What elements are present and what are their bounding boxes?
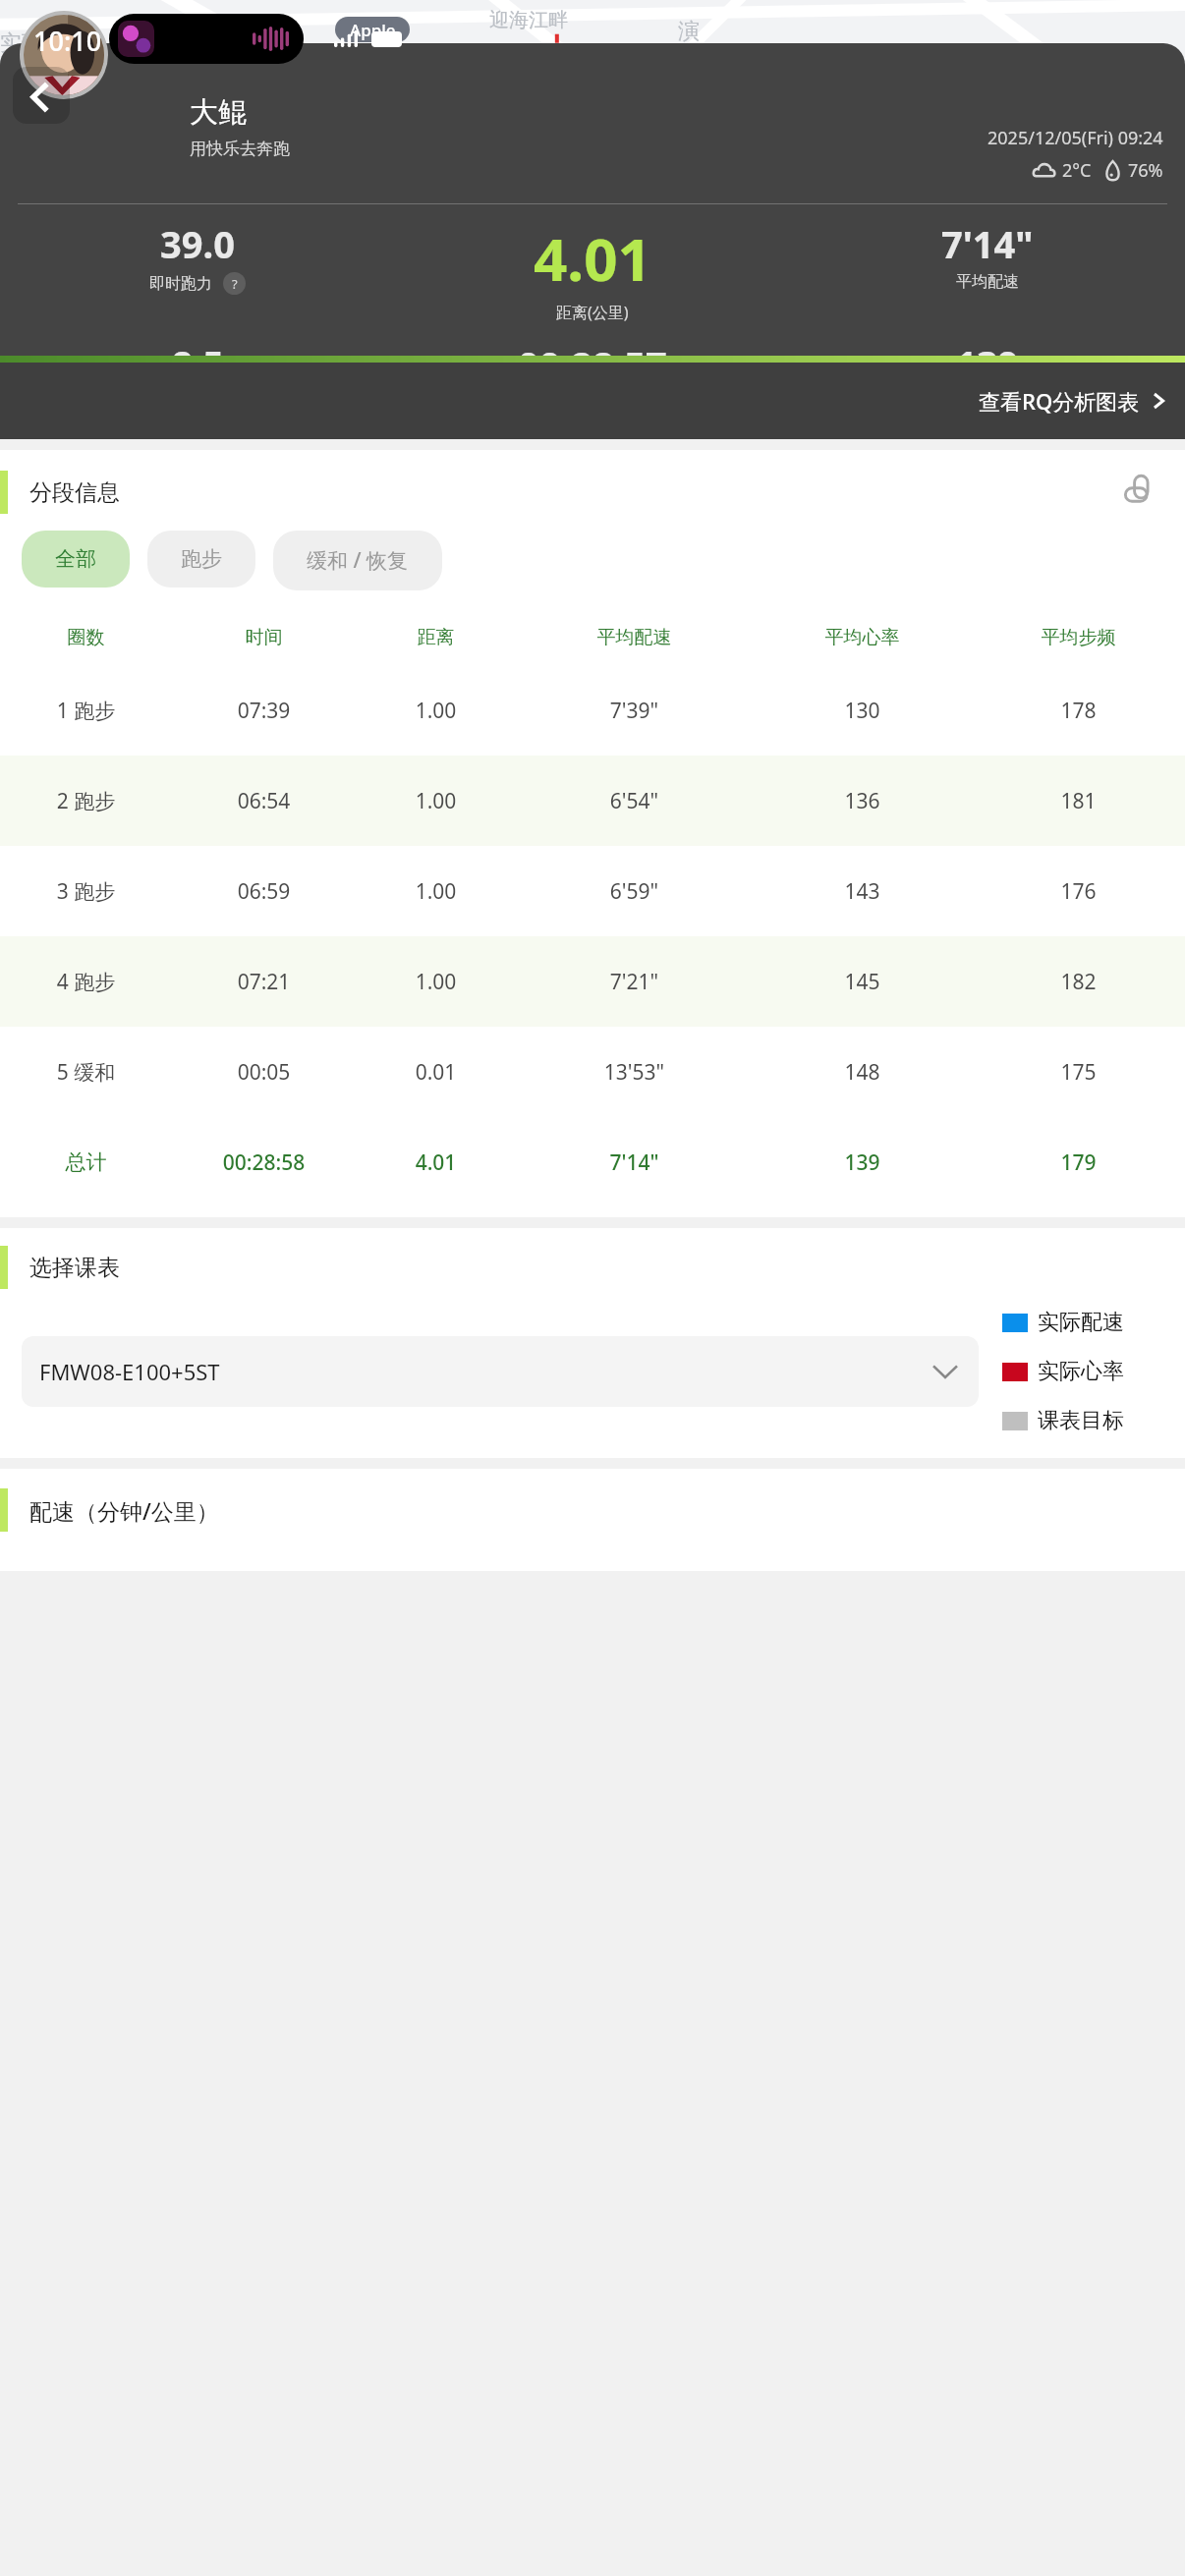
staticText: 148 — [753, 1058, 972, 1087]
staticText: 2025/12/05(Fri) 09:24 — [987, 126, 1163, 150]
staticText: 1.00 — [356, 877, 516, 906]
staticText: 分段信息 — [29, 478, 120, 507]
staticText: 2 跑步 — [0, 787, 172, 815]
button[interactable]: 跑步 — [147, 531, 255, 588]
staticText: 配速（分钟/公里） — [29, 1495, 219, 1526]
staticText: 实际配速 — [1038, 1309, 1124, 1336]
staticText: 迎海江畔 — [489, 8, 568, 32]
staticText: 平均心率 — [753, 626, 972, 649]
staticText: Apple — [350, 19, 396, 41]
staticText: 00:28:58 — [172, 1148, 356, 1177]
staticText: 145 — [753, 968, 972, 996]
button[interactable]: 查看RQ分析图表 — [0, 363, 1185, 439]
staticText: 平均步频 — [972, 626, 1185, 649]
staticText: 4 跑步 — [0, 968, 172, 996]
staticText: 6'59" — [516, 877, 753, 906]
staticText: 距离 — [356, 626, 516, 649]
staticText: 实验中心 — [0, 29, 86, 57]
staticText: 选择课表 — [29, 1254, 120, 1282]
staticText: 13'53" — [516, 1058, 753, 1087]
staticText: 1.00 — [356, 697, 516, 725]
staticText: 39.0 — [160, 218, 235, 269]
staticText: 181 — [972, 787, 1185, 815]
staticText: 143 — [753, 877, 972, 906]
staticText: 大鲲 — [190, 94, 247, 131]
button[interactable]: 全部 — [22, 531, 130, 588]
staticText: 4.01 — [356, 1148, 516, 1177]
staticText: 182 — [972, 968, 1185, 996]
button[interactable]: FMW08-E100+5ST — [22, 1336, 979, 1407]
staticText: 2°C — [1062, 158, 1092, 183]
button[interactable]: 4 跑步 — [0, 936, 1185, 1027]
staticText: 课表目标 — [1038, 1407, 1124, 1434]
staticText: 07:39 — [172, 697, 356, 725]
button[interactable]: Rotate screen — [1118, 468, 1167, 517]
staticText: FMW08-E100+5ST — [39, 1357, 220, 1386]
staticText: 全部 — [55, 546, 96, 572]
staticText: 6'54" — [516, 787, 753, 815]
staticText: 4.01 — [534, 218, 651, 299]
staticText: 00:05 — [172, 1058, 356, 1087]
staticText: 139 — [753, 1148, 972, 1177]
staticText: 平均心率 — [956, 391, 1019, 411]
staticText: 时间 — [172, 626, 356, 649]
staticText: 130 — [753, 697, 972, 725]
staticText: 179 — [972, 1148, 1185, 1177]
staticText: 76% — [1128, 158, 1163, 183]
button[interactable]: Back — [13, 67, 70, 124]
staticText: 5 缓和 — [0, 1058, 172, 1087]
staticText: 136 — [753, 787, 972, 815]
staticText: 0.77 — [556, 429, 629, 478]
staticText: 查看RQ分析图表 — [979, 386, 1140, 416]
staticText: 23 — [177, 429, 219, 478]
staticText: 7'14" — [941, 218, 1034, 269]
staticText: 7'21" — [516, 968, 753, 996]
staticText: 3 跑步 — [0, 877, 172, 906]
staticText: 1 跑步 — [0, 697, 172, 725]
button[interactable]: 1 跑步 — [0, 665, 1185, 756]
staticText: 平均配速 — [956, 272, 1019, 292]
staticText: 7'14" — [516, 1148, 753, 1177]
staticText: 178 — [972, 697, 1185, 725]
staticText: 缓和 / 恢复 — [307, 546, 409, 575]
staticText: 跑步 — [181, 546, 222, 572]
staticText: 07:21 — [172, 968, 356, 996]
staticText: 总计 — [0, 1149, 172, 1175]
staticText: 实际心率 — [1038, 1358, 1124, 1385]
staticText: 1.00 — [356, 787, 516, 815]
button[interactable]: 5 缓和 — [0, 1027, 1185, 1117]
staticText: 179 — [956, 429, 1019, 478]
staticText: 00:28:57 — [518, 339, 667, 390]
staticText: 即时跑力 — [149, 274, 212, 294]
staticText: 139 — [956, 339, 1019, 388]
staticText: 176 — [972, 877, 1185, 906]
staticText: 湾欣 — [254, 29, 297, 57]
staticText: 用快乐去奔跑 — [190, 139, 290, 159]
staticText: 1.00 — [356, 968, 516, 996]
staticText: 10:10 — [33, 23, 102, 59]
staticText: 8.5 — [172, 339, 224, 388]
staticText: 7'39" — [516, 697, 753, 725]
button[interactable]: Info — [223, 272, 246, 295]
staticText: 06:54 — [172, 787, 356, 815]
staticText: 距离(公里) — [556, 302, 629, 323]
button[interactable]: 2 跑步 — [0, 756, 1185, 846]
staticText: 175 — [972, 1058, 1185, 1087]
button[interactable]: 3 跑步 — [0, 846, 1185, 936]
staticText: 0.01 — [356, 1058, 516, 1087]
staticText: 演 — [678, 18, 700, 45]
staticText: ? — [232, 275, 238, 293]
staticText: 06:59 — [172, 877, 356, 906]
staticText: 平均配速 — [516, 626, 753, 649]
button[interactable]: 缓和 / 恢复 — [273, 531, 442, 590]
staticText: 圈数 — [0, 626, 172, 649]
